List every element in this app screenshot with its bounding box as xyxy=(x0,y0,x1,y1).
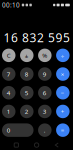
staticText: 3 xyxy=(43,107,47,116)
staticText: % xyxy=(42,51,47,60)
button[interactable]: 3 xyxy=(38,105,52,118)
staticText: 2 xyxy=(25,107,29,116)
staticText: C xyxy=(7,51,11,60)
staticText: + xyxy=(61,107,65,116)
staticText: . xyxy=(44,126,46,134)
button[interactable]: 0 xyxy=(2,123,33,137)
staticText: × xyxy=(61,70,65,78)
button[interactable]: × xyxy=(56,67,70,81)
button[interactable]: 8 xyxy=(20,67,33,81)
staticText: 8 xyxy=(25,70,29,78)
staticText: 5 xyxy=(25,89,29,97)
button[interactable]: Back xyxy=(55,143,59,147)
staticText: 9 xyxy=(43,70,47,78)
button[interactable]: 5 xyxy=(20,86,33,99)
button[interactable]: . xyxy=(38,123,52,137)
button[interactable]: 7 xyxy=(2,67,15,81)
button[interactable]: ± xyxy=(20,49,33,62)
staticText: = xyxy=(61,126,65,134)
button[interactable]: 2 xyxy=(20,105,33,118)
staticText: ÷ xyxy=(61,51,65,60)
staticText: ± xyxy=(25,51,29,60)
button[interactable]: − xyxy=(56,86,70,99)
button[interactable]: 4 xyxy=(2,86,15,99)
staticText: 16 832 595 xyxy=(3,30,70,46)
button[interactable]: Recent apps xyxy=(14,143,18,147)
button[interactable]: Home xyxy=(34,143,39,147)
button[interactable]: ÷ xyxy=(56,49,70,62)
button[interactable]: + xyxy=(56,105,70,118)
button[interactable]: = xyxy=(56,123,70,137)
button[interactable]: 1 xyxy=(2,105,15,118)
staticText: 1 xyxy=(7,107,11,116)
staticText: 0 xyxy=(7,126,11,134)
button[interactable]: % xyxy=(38,49,52,62)
staticText: 7 xyxy=(7,70,11,78)
button[interactable]: C xyxy=(2,49,15,62)
button[interactable]: 9 xyxy=(38,67,52,81)
button[interactable]: 6 xyxy=(38,86,52,99)
staticText: 6 xyxy=(43,89,47,97)
staticText: 4 xyxy=(7,89,11,97)
staticText: 00:10 xyxy=(2,1,20,9)
staticText: − xyxy=(61,89,65,97)
